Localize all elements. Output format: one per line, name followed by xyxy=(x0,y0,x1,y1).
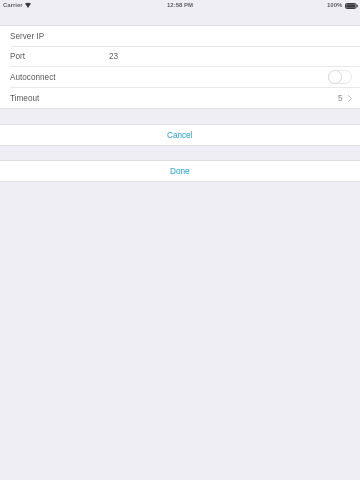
button[interactable]: Autoconnect xyxy=(0,67,360,87)
button[interactable]: Autoconnect, off xyxy=(328,70,352,84)
staticText: Cancel xyxy=(167,131,193,140)
staticText: Autoconnect xyxy=(10,73,56,82)
other: Wi-Fi xyxy=(25,3,31,8)
staticText: Server IP xyxy=(10,32,45,41)
staticText: Done xyxy=(170,167,190,176)
other: Battery full xyxy=(345,3,358,9)
button[interactable]: Cancel xyxy=(0,125,360,145)
button[interactable]: Timeout xyxy=(0,88,360,108)
button[interactable]: Port xyxy=(0,47,360,66)
staticText: Carrier xyxy=(3,2,23,9)
staticText: Timeout xyxy=(10,94,40,103)
staticText: 12:58 PM xyxy=(167,2,194,9)
button[interactable]: Done xyxy=(0,161,360,181)
button[interactable]: Server IP xyxy=(0,26,360,46)
staticText: Port xyxy=(10,52,26,61)
staticText: 100% xyxy=(327,2,343,9)
staticText: 23 xyxy=(109,52,119,61)
staticText: 5 xyxy=(338,94,343,103)
